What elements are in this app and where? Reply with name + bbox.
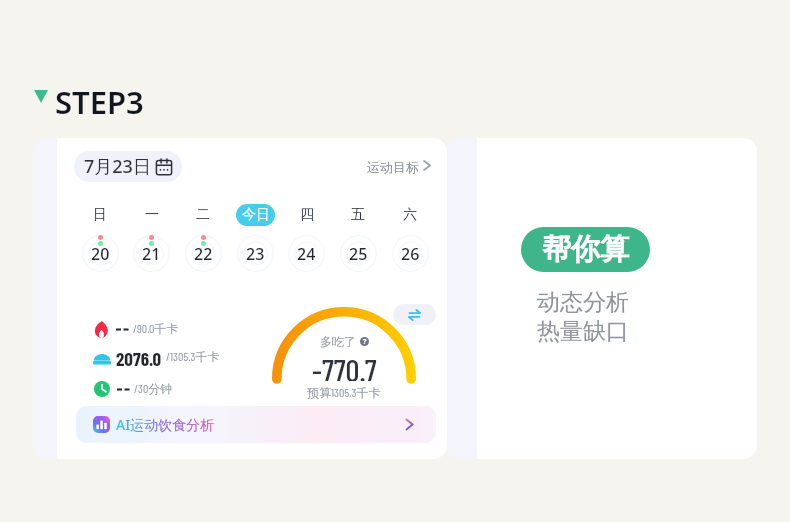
- staticText: 帮你算: [542, 231, 629, 268]
- staticText: 日: [93, 206, 107, 224]
- button[interactable]: 日: [74, 203, 126, 227]
- staticText: 21: [142, 243, 161, 265]
- staticText: 四: [300, 206, 314, 224]
- button[interactable]: 23: [237, 235, 274, 272]
- button[interactable]: [363, 154, 447, 176]
- staticText: /1305.3千卡: [166, 349, 220, 365]
- staticText: -770.7: [312, 351, 377, 381]
- staticText: 五: [351, 206, 365, 224]
- button[interactable]: 二: [177, 203, 229, 227]
- staticText: 二: [196, 206, 210, 224]
- staticText: 23: [246, 243, 265, 265]
- button[interactable]: 帮你算: [521, 227, 650, 272]
- staticText: 今日: [242, 206, 270, 224]
- staticText: /30分钟: [134, 381, 173, 397]
- staticText: 2076.0: [116, 347, 162, 367]
- staticText: AI运动饮食分析: [116, 415, 215, 434]
- button[interactable]: 六: [384, 203, 436, 227]
- button[interactable]: 26: [392, 235, 429, 272]
- staticText: 25: [349, 243, 368, 265]
- button[interactable]: 20: [82, 235, 119, 272]
- button[interactable]: AI运动饮食分析: [76, 406, 436, 443]
- staticText: 22: [194, 243, 213, 265]
- button[interactable]: 切换: [393, 304, 436, 325]
- button[interactable]: 7月23日: [74, 151, 182, 182]
- staticText: 动态分析: [537, 288, 629, 317]
- button[interactable]: 21: [133, 235, 170, 272]
- button[interactable]: 今日: [229, 203, 281, 227]
- button[interactable]: 24: [288, 235, 325, 272]
- staticText: 26: [401, 243, 420, 265]
- staticText: 六: [403, 206, 417, 224]
- staticText: /90.0千卡: [133, 321, 179, 337]
- staticText: 7月23日: [84, 154, 151, 179]
- staticText: ?: [363, 337, 367, 346]
- staticText: 热量缺口: [537, 317, 629, 346]
- staticText: 20: [91, 243, 110, 265]
- staticText: 多吃了: [320, 334, 356, 349]
- staticText: STEP3: [55, 81, 144, 123]
- button[interactable]: 四: [281, 203, 333, 227]
- button[interactable]: 说明: [360, 337, 369, 346]
- button[interactable]: 五: [332, 203, 384, 227]
- staticText: 24: [297, 243, 316, 265]
- button[interactable]: 25: [340, 235, 377, 272]
- staticText: 一: [145, 206, 159, 224]
- button[interactable]: 22: [185, 235, 222, 272]
- staticText: 运动目标: [367, 159, 419, 175]
- button[interactable]: 一: [126, 203, 178, 227]
- staticText: 预算1305.3千卡: [307, 385, 381, 401]
